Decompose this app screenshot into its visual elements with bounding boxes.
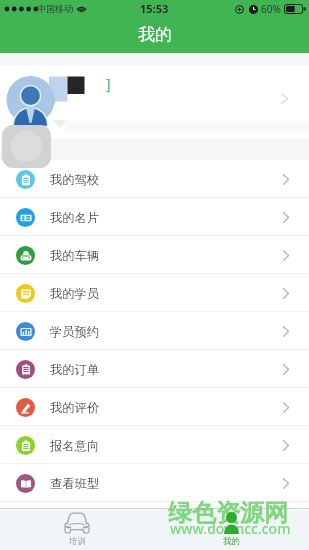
staticText: 我的驾校 <box>50 172 100 187</box>
button[interactable]: 我的评价 <box>0 388 309 426</box>
staticText: 我的订单 <box>50 362 100 377</box>
button[interactable]: 报名意向 <box>0 426 309 464</box>
staticText: www.downcc.com <box>170 519 291 538</box>
staticText: 培训 <box>69 536 86 547</box>
button[interactable]: ] <box>0 65 309 138</box>
button[interactable]: 培训 <box>0 509 154 550</box>
staticText: 学员预约 <box>50 324 100 339</box>
button[interactable]: 我的驾校 <box>0 160 309 198</box>
button[interactable]: 我的订单 <box>0 350 309 388</box>
staticText: 15:53 <box>140 1 169 16</box>
staticText: ] <box>106 74 111 93</box>
staticText: 查看班型 <box>50 476 100 491</box>
staticText: 我的学员 <box>50 286 100 301</box>
staticText: 我的车辆 <box>50 248 100 263</box>
button[interactable]: 我的车辆 <box>0 236 309 274</box>
button[interactable]: 学员预约 <box>0 312 309 350</box>
staticText: 我的 <box>223 536 240 547</box>
button[interactable]: 查看班型 <box>0 464 309 502</box>
staticText: 60% <box>261 2 281 16</box>
button[interactable]: 我的 <box>154 509 309 550</box>
staticText: 中国移动 <box>37 3 73 14</box>
staticText: 绿色资源网 <box>168 498 288 528</box>
staticText: 我的 <box>138 24 172 45</box>
staticText: 我的名片 <box>50 210 100 225</box>
staticText: 报名意向 <box>50 438 100 453</box>
button[interactable]: 我的学员 <box>0 274 309 312</box>
staticText: 我的评价 <box>50 400 100 415</box>
button[interactable]: 我的名片 <box>0 198 309 236</box>
